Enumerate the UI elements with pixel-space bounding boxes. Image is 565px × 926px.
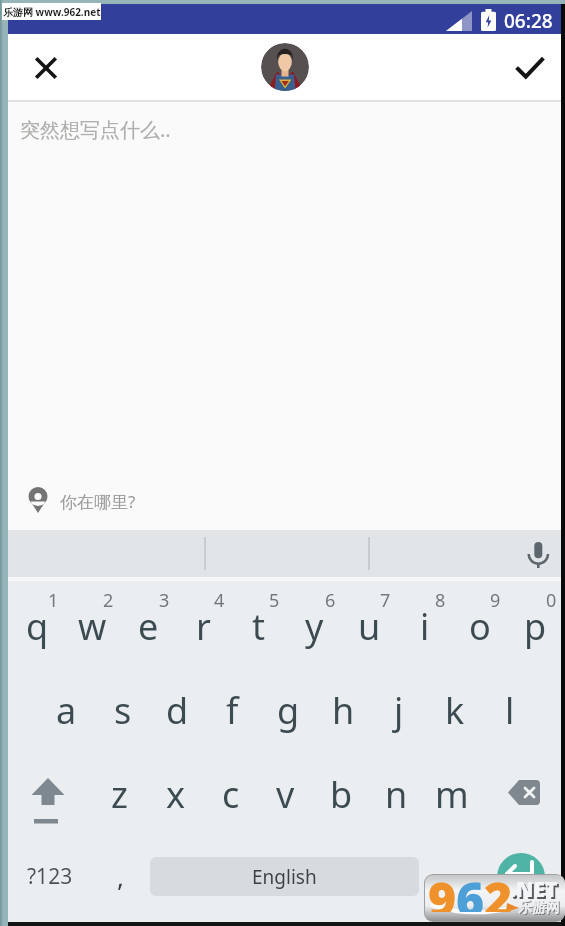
button[interactable]: h	[316, 685, 371, 735]
staticText: 6	[325, 588, 336, 613]
staticText: 5	[269, 588, 280, 613]
staticText: x	[166, 770, 186, 819]
button[interactable]: q	[10, 601, 65, 651]
button[interactable]	[261, 43, 309, 91]
staticText: y	[305, 602, 324, 651]
staticText: o	[469, 602, 491, 651]
button[interactable]: b	[314, 769, 369, 819]
button[interactable]: z	[92, 769, 147, 819]
staticText: l	[505, 686, 515, 735]
button[interactable]: d	[150, 685, 205, 735]
staticText: 你在哪里?	[60, 490, 136, 513]
staticText: 乐游网	[519, 900, 561, 918]
staticText: 3	[159, 588, 170, 613]
staticText: m	[435, 770, 469, 819]
staticText: 乐游网	[518, 899, 560, 917]
button[interactable]: ?123	[18, 852, 82, 900]
button[interactable]: x	[148, 769, 203, 819]
staticText: 7	[380, 588, 391, 613]
button[interactable]: 你在哪里?	[8, 478, 561, 530]
staticText: .NET	[512, 877, 560, 906]
staticText: 8	[435, 588, 446, 613]
button[interactable]: o	[452, 601, 507, 651]
staticText: 4	[214, 588, 225, 613]
staticText: 9	[428, 875, 457, 912]
staticText: h	[332, 686, 355, 735]
button[interactable]	[516, 530, 561, 577]
button[interactable]: s	[95, 685, 150, 735]
button[interactable]	[497, 853, 545, 901]
staticText: 突然想写点什么..	[20, 116, 171, 143]
staticText: g	[277, 686, 300, 735]
button[interactable]: i	[397, 601, 452, 651]
staticText: 6	[456, 875, 485, 912]
staticText: w	[78, 602, 107, 651]
staticText: k	[445, 686, 465, 735]
button[interactable]: k	[427, 685, 482, 735]
staticText: ,	[117, 859, 124, 894]
staticText: d	[166, 686, 189, 735]
staticText: b	[330, 770, 353, 819]
staticText: p	[524, 602, 547, 651]
staticText: 2	[103, 588, 114, 613]
button[interactable]: e	[121, 601, 176, 651]
staticText: j	[394, 686, 404, 735]
button[interactable]: g	[261, 685, 316, 735]
staticText: 9	[490, 588, 501, 613]
staticText: t	[252, 602, 265, 651]
button[interactable]: u	[342, 601, 397, 651]
staticText: c	[222, 770, 240, 819]
button[interactable]: f	[205, 685, 260, 735]
button[interactable]: p	[508, 601, 563, 651]
staticText: .NET	[510, 875, 558, 904]
button[interactable]: English	[150, 857, 419, 896]
staticText: ?123	[27, 862, 73, 891]
button[interactable]: ,	[95, 852, 145, 900]
button[interactable]	[498, 770, 553, 820]
staticText: English	[252, 864, 317, 890]
staticText: q	[26, 602, 49, 651]
staticText: 2	[484, 875, 513, 912]
button[interactable]	[508, 46, 552, 90]
staticText: 0	[546, 588, 557, 613]
staticText: i	[420, 602, 430, 651]
staticText: r	[196, 602, 211, 651]
button[interactable]: r	[176, 601, 231, 651]
staticText: s	[114, 686, 132, 735]
staticText: a	[56, 686, 77, 735]
button[interactable]: w	[65, 601, 120, 651]
button[interactable]: l	[482, 685, 537, 735]
button[interactable]	[24, 46, 68, 90]
staticText: n	[385, 770, 408, 819]
button[interactable]: c	[203, 769, 258, 819]
staticText: 乐游网 www.962.net	[3, 5, 101, 19]
staticText: 1	[48, 588, 59, 613]
button[interactable]: y	[287, 601, 342, 651]
button[interactable]: n	[369, 769, 424, 819]
button[interactable]: a	[39, 685, 94, 735]
staticText: f	[226, 686, 239, 735]
staticText: e	[138, 602, 159, 651]
button[interactable]: m	[424, 769, 479, 819]
button[interactable]: t	[231, 601, 286, 651]
staticText: 06:28	[504, 8, 553, 34]
staticText: z	[111, 770, 128, 819]
staticText: v	[276, 770, 295, 819]
button[interactable]	[24, 770, 74, 830]
staticText: u	[358, 602, 381, 651]
button[interactable]: j	[371, 685, 426, 735]
button[interactable]: v	[258, 769, 313, 819]
